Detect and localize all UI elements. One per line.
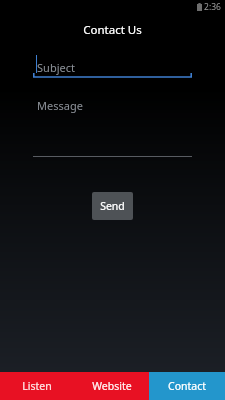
staticText: Send xyxy=(100,199,125,213)
staticText: Website xyxy=(92,379,132,393)
staticText: Listen xyxy=(22,379,52,393)
staticText: Subject xyxy=(37,60,75,75)
button[interactable]: Contact xyxy=(149,372,225,400)
button[interactable]: Listen xyxy=(0,372,74,400)
staticText: 2:36 xyxy=(204,1,221,13)
button[interactable]: Message xyxy=(0,94,225,159)
staticText: Contact Us xyxy=(83,22,142,38)
button[interactable]: Website xyxy=(74,372,149,400)
button[interactable]: Send xyxy=(92,192,133,220)
staticText: Contact xyxy=(168,379,206,393)
button[interactable]: Subject xyxy=(0,46,225,86)
staticText: Message xyxy=(37,98,83,113)
